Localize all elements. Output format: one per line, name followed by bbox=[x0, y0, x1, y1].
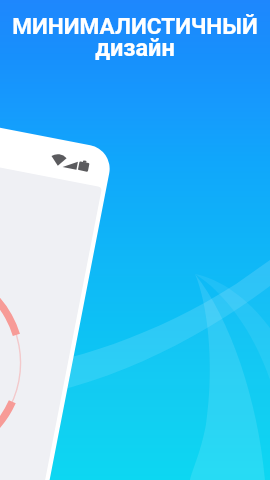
button[interactable]: МИНИМАЛИСТИЧНЫЙ bbox=[12, 13, 258, 67]
staticText: МИНИМАЛИСТИЧНЫЙ bbox=[12, 13, 258, 39]
staticText: дизайн bbox=[95, 34, 175, 62]
